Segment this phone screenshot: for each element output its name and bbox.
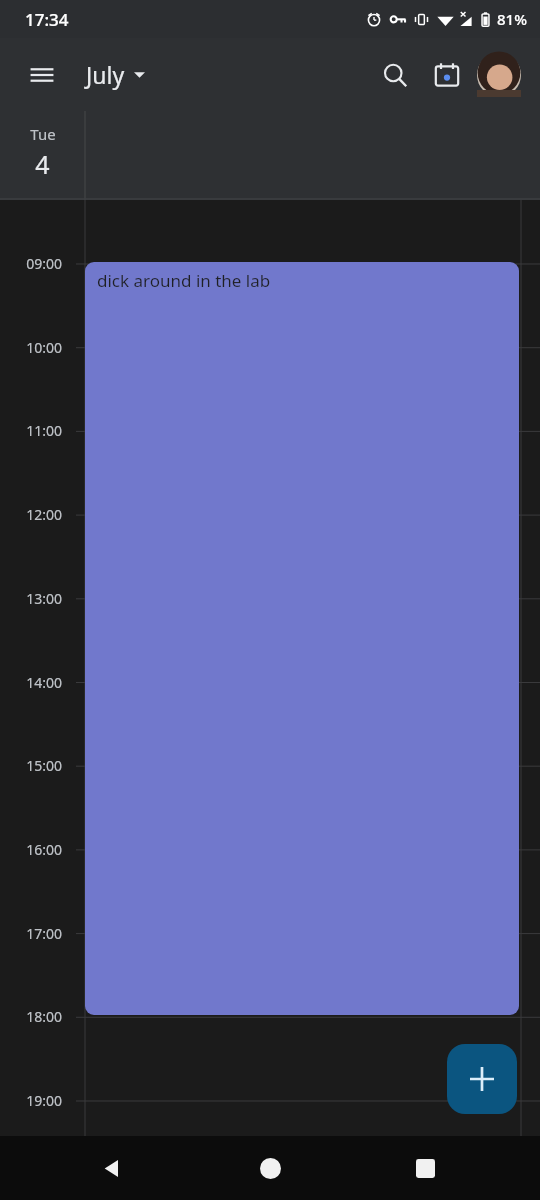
button[interactable]: Open navigation drawer (14, 47, 70, 103)
staticText: 17:34 (25, 8, 69, 31)
staticText: dick around in the lab (97, 269, 271, 292)
staticText: 18:00 (26, 1007, 62, 1026)
staticText: 09:00 (26, 254, 62, 273)
staticText: 11:00 (26, 421, 62, 440)
button[interactable]: Tue (0, 124, 85, 181)
button[interactable]: dick around in the lab (85, 262, 519, 1015)
button[interactable]: Account and settings (473, 49, 525, 101)
button[interactable]: Go to today (421, 49, 473, 101)
staticText: 16:00 (26, 840, 62, 859)
button[interactable]: Search (369, 49, 421, 101)
button[interactable]: Recent apps (395, 1138, 455, 1198)
staticText: 14:00 (26, 673, 62, 692)
staticText: Tue (30, 124, 56, 144)
button[interactable]: July (80, 51, 151, 98)
staticText: 81% (497, 9, 527, 29)
staticText: 12:00 (26, 505, 62, 524)
staticText: 15:00 (26, 756, 62, 775)
staticText: 4 (35, 147, 50, 181)
staticText: 13:00 (26, 589, 62, 608)
staticText: 10:00 (26, 338, 62, 357)
staticText: July (86, 59, 125, 90)
button[interactable]: Create new event (447, 1044, 517, 1114)
staticText: 17:00 (26, 924, 62, 943)
button[interactable]: Back (82, 1138, 142, 1198)
button[interactable]: Home (240, 1138, 300, 1198)
staticText: 19:00 (26, 1091, 62, 1110)
